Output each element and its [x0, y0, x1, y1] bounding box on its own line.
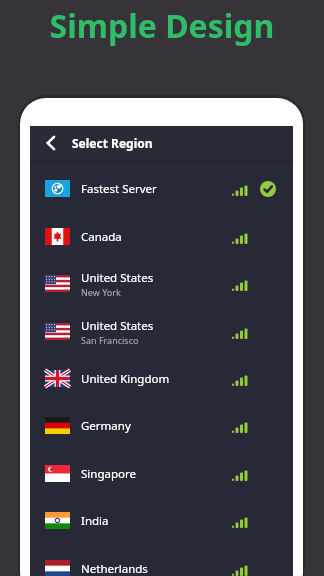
button[interactable]: Netherlands: [30, 545, 293, 576]
button[interactable]: Singapore: [30, 450, 293, 497]
staticText: United Kingdom: [81, 371, 170, 387]
staticText: Netherlands: [81, 561, 148, 576]
button[interactable]: India: [30, 497, 293, 544]
button[interactable]: Germany: [30, 402, 293, 449]
button[interactable]: United States: [30, 260, 293, 307]
staticText: Canada: [81, 229, 122, 245]
staticText: Fastest Server: [81, 181, 157, 197]
staticText: Germany: [81, 418, 131, 434]
staticText: Simple Design: [0, 4, 324, 48]
staticText: Select Region: [72, 135, 153, 151]
button[interactable]: Select Region: [30, 126, 293, 160]
staticText: New York: [81, 286, 121, 298]
staticText: United States: [81, 318, 154, 334]
staticText: Singapore: [81, 466, 136, 482]
button[interactable]: United States: [30, 308, 293, 355]
button[interactable]: Canada: [30, 213, 293, 260]
staticText: India: [81, 513, 109, 529]
button[interactable]: United Kingdom: [30, 355, 293, 402]
button[interactable]: Fastest Server: [30, 165, 293, 212]
staticText: San Francisco: [81, 334, 139, 346]
staticText: United States: [81, 270, 154, 286]
